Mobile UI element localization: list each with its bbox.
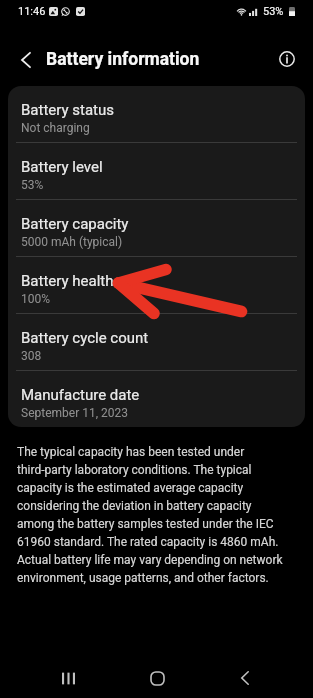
- button[interactable]: Battery level: [8, 143, 305, 200]
- staticText: Not charging: [21, 121, 90, 135]
- button[interactable]: Battery cycle count: [8, 314, 305, 371]
- button[interactable]: Back: [225, 658, 265, 698]
- staticText: 53%: [21, 178, 44, 192]
- staticText: Battery information: [46, 49, 200, 70]
- staticText: September 11, 2023: [21, 406, 128, 420]
- staticText: 5000 mAh (typical): [21, 235, 123, 249]
- button[interactable]: Battery capacity: [8, 200, 305, 257]
- button[interactable]: Back: [7, 41, 44, 78]
- staticText: The typical capacity has been tested und…: [17, 445, 283, 585]
- button[interactable]: Battery health: [8, 257, 305, 314]
- button[interactable]: Manufacture date: [8, 371, 305, 427]
- staticText: Battery capacity: [21, 215, 129, 233]
- staticText: 53%: [263, 5, 284, 18]
- staticText: Battery status: [21, 101, 115, 119]
- staticText: Battery level: [21, 158, 103, 176]
- button[interactable]: Home: [137, 658, 177, 698]
- staticText: 11:46: [18, 5, 46, 18]
- button[interactable]: Battery status: [8, 86, 305, 143]
- staticText: Manufacture date: [21, 386, 140, 404]
- staticText: 100%: [21, 292, 51, 306]
- staticText: Battery cycle count: [21, 329, 149, 347]
- button[interactable]: Recents: [48, 658, 88, 698]
- button[interactable]: Info: [269, 41, 305, 77]
- staticText: Battery health: [21, 272, 114, 290]
- staticText: 308: [21, 349, 42, 363]
